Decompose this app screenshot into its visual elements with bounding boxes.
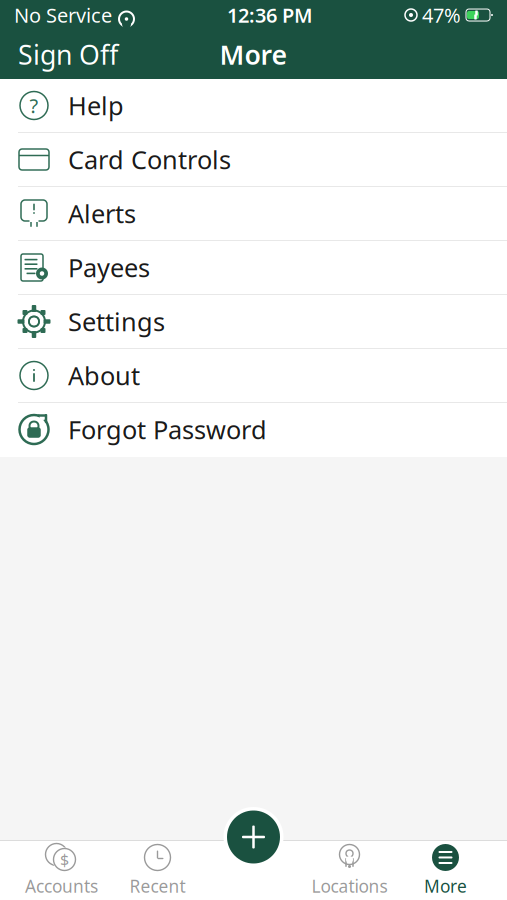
staticText: Sign Off [18, 37, 118, 72]
staticText: Help [68, 89, 124, 122]
button[interactable]: Settings [0, 295, 507, 349]
button[interactable]: Recent [109, 841, 205, 899]
button[interactable]: Forgot Password [0, 403, 507, 457]
button[interactable]: $ [13, 841, 109, 899]
staticText: 12:36 PM [227, 2, 313, 28]
staticText: Alerts [68, 197, 136, 230]
staticText: Payees [68, 251, 150, 284]
staticText: Forgot Password [68, 413, 267, 446]
button[interactable]: Add [222, 806, 284, 868]
button[interactable]: Alerts [0, 187, 507, 241]
staticText: 47% [422, 2, 461, 28]
button[interactable]: Locations [301, 841, 397, 899]
staticText: Accounts [25, 874, 98, 897]
staticText: Recent [129, 874, 185, 897]
staticText: $ [60, 849, 69, 870]
button[interactable]: Card Controls [0, 133, 507, 187]
staticText: Locations [311, 874, 387, 897]
staticText: Card Controls [68, 143, 231, 176]
button[interactable]: ? [0, 79, 507, 133]
staticText: No Service [14, 2, 112, 28]
staticText: More [424, 874, 467, 897]
staticText: More [219, 37, 287, 72]
staticText: Settings [68, 305, 165, 338]
button[interactable]: Sign Off [0, 30, 136, 79]
staticText: About [68, 359, 140, 392]
button[interactable]: More [397, 841, 493, 899]
button[interactable]: Payees [0, 241, 507, 295]
button[interactable]: About [0, 349, 507, 403]
staticText: ? [29, 92, 38, 119]
